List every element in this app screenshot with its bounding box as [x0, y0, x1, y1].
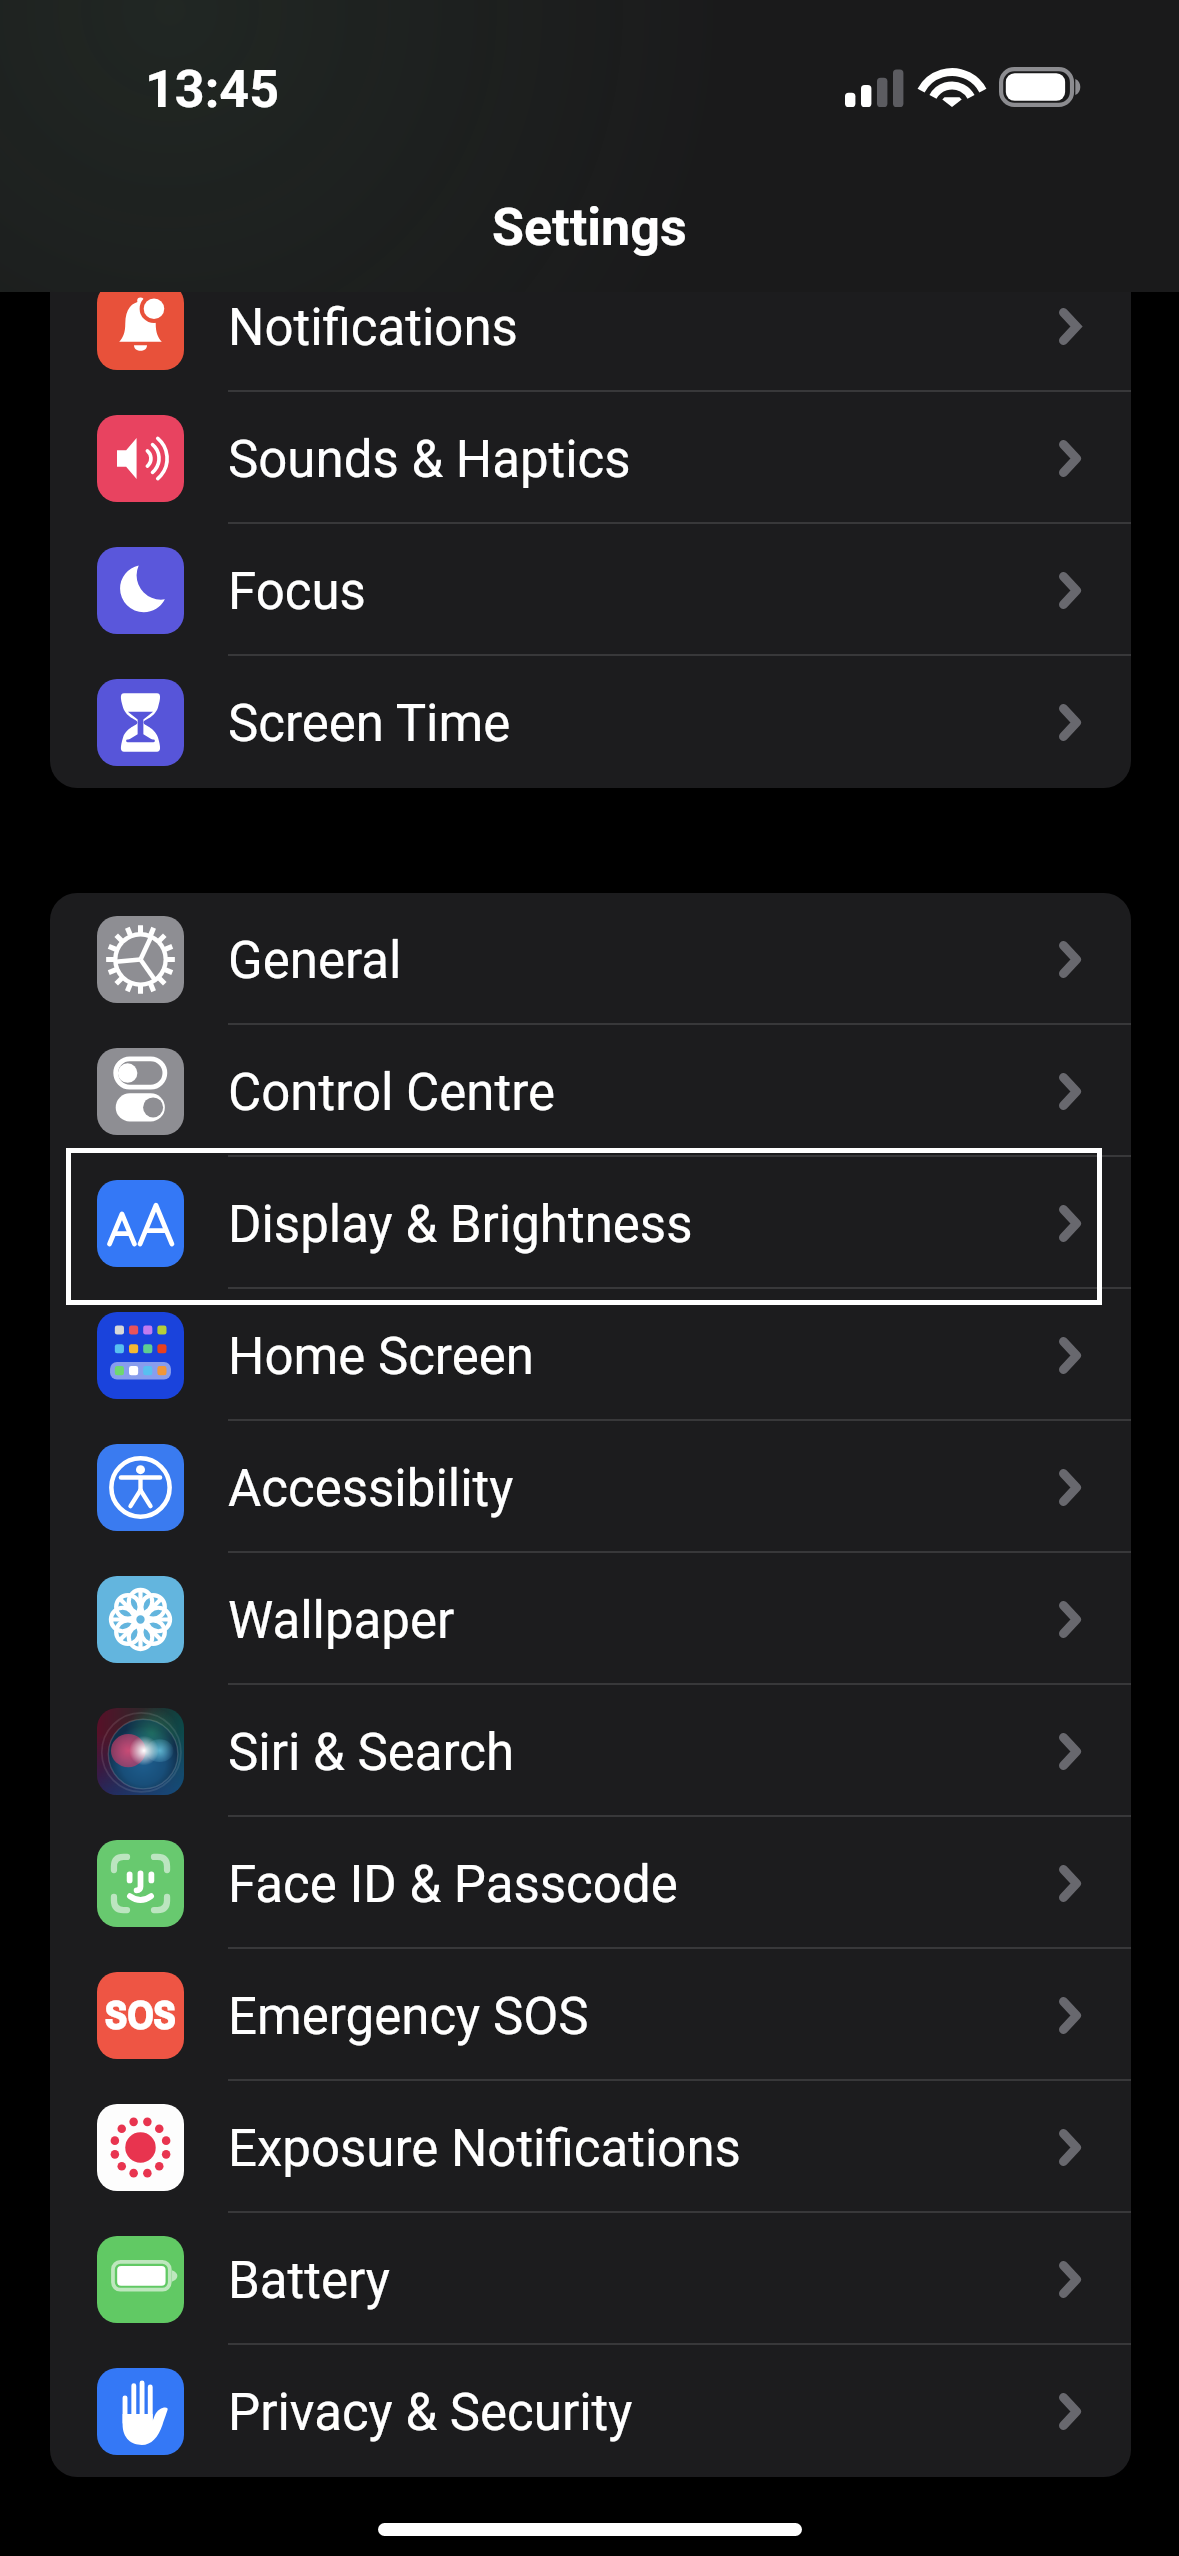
staticText: Display & Brightness — [228, 1195, 693, 1255]
staticText: Privacy & Security — [228, 2383, 633, 2443]
button[interactable]: Privacy & Security — [50, 2345, 1131, 2477]
button[interactable]: Exposure Notifications — [50, 2081, 1131, 2213]
staticText: Settings — [492, 197, 687, 258]
staticText: Home Screen — [228, 1327, 534, 1387]
button[interactable]: Siri & Search — [50, 1685, 1131, 1817]
staticText: Battery — [228, 2251, 390, 2311]
staticText: Screen Time — [228, 694, 511, 754]
button[interactable]: Emergency SOS — [50, 1949, 1131, 2081]
button[interactable]: Face ID & Passcode — [50, 1817, 1131, 1949]
button[interactable]: Focus — [50, 524, 1131, 656]
staticText: 13:45 — [145, 59, 279, 120]
button[interactable]: General — [50, 893, 1131, 1025]
button[interactable]: Screen Time — [50, 656, 1131, 788]
button[interactable]: Notifications — [50, 260, 1131, 392]
staticText: Accessibility — [228, 1459, 514, 1519]
staticText: General — [228, 931, 402, 991]
staticText: Siri & Search — [228, 1723, 515, 1783]
staticText: Face ID & Passcode — [228, 1855, 678, 1915]
button[interactable]: Home Screen — [50, 1289, 1131, 1421]
button[interactable]: Wallpaper — [50, 1553, 1131, 1685]
button[interactable]: Sounds & Haptics — [50, 392, 1131, 524]
staticText: Sounds & Haptics — [228, 430, 631, 490]
staticText: Wallpaper — [228, 1591, 455, 1651]
staticText: SOS — [105, 1987, 177, 2042]
staticText: Control Centre — [228, 1063, 555, 1123]
button[interactable]: Battery — [50, 2213, 1131, 2345]
button[interactable]: Display & Brightness — [50, 1157, 1131, 1289]
button[interactable]: Accessibility — [50, 1421, 1131, 1553]
staticText: Focus — [228, 562, 366, 622]
button[interactable]: Control Centre — [50, 1025, 1131, 1157]
staticText: Exposure Notifications — [228, 2119, 741, 2179]
staticText: Notifications — [228, 298, 518, 358]
staticText: Emergency SOS — [228, 1987, 589, 2047]
